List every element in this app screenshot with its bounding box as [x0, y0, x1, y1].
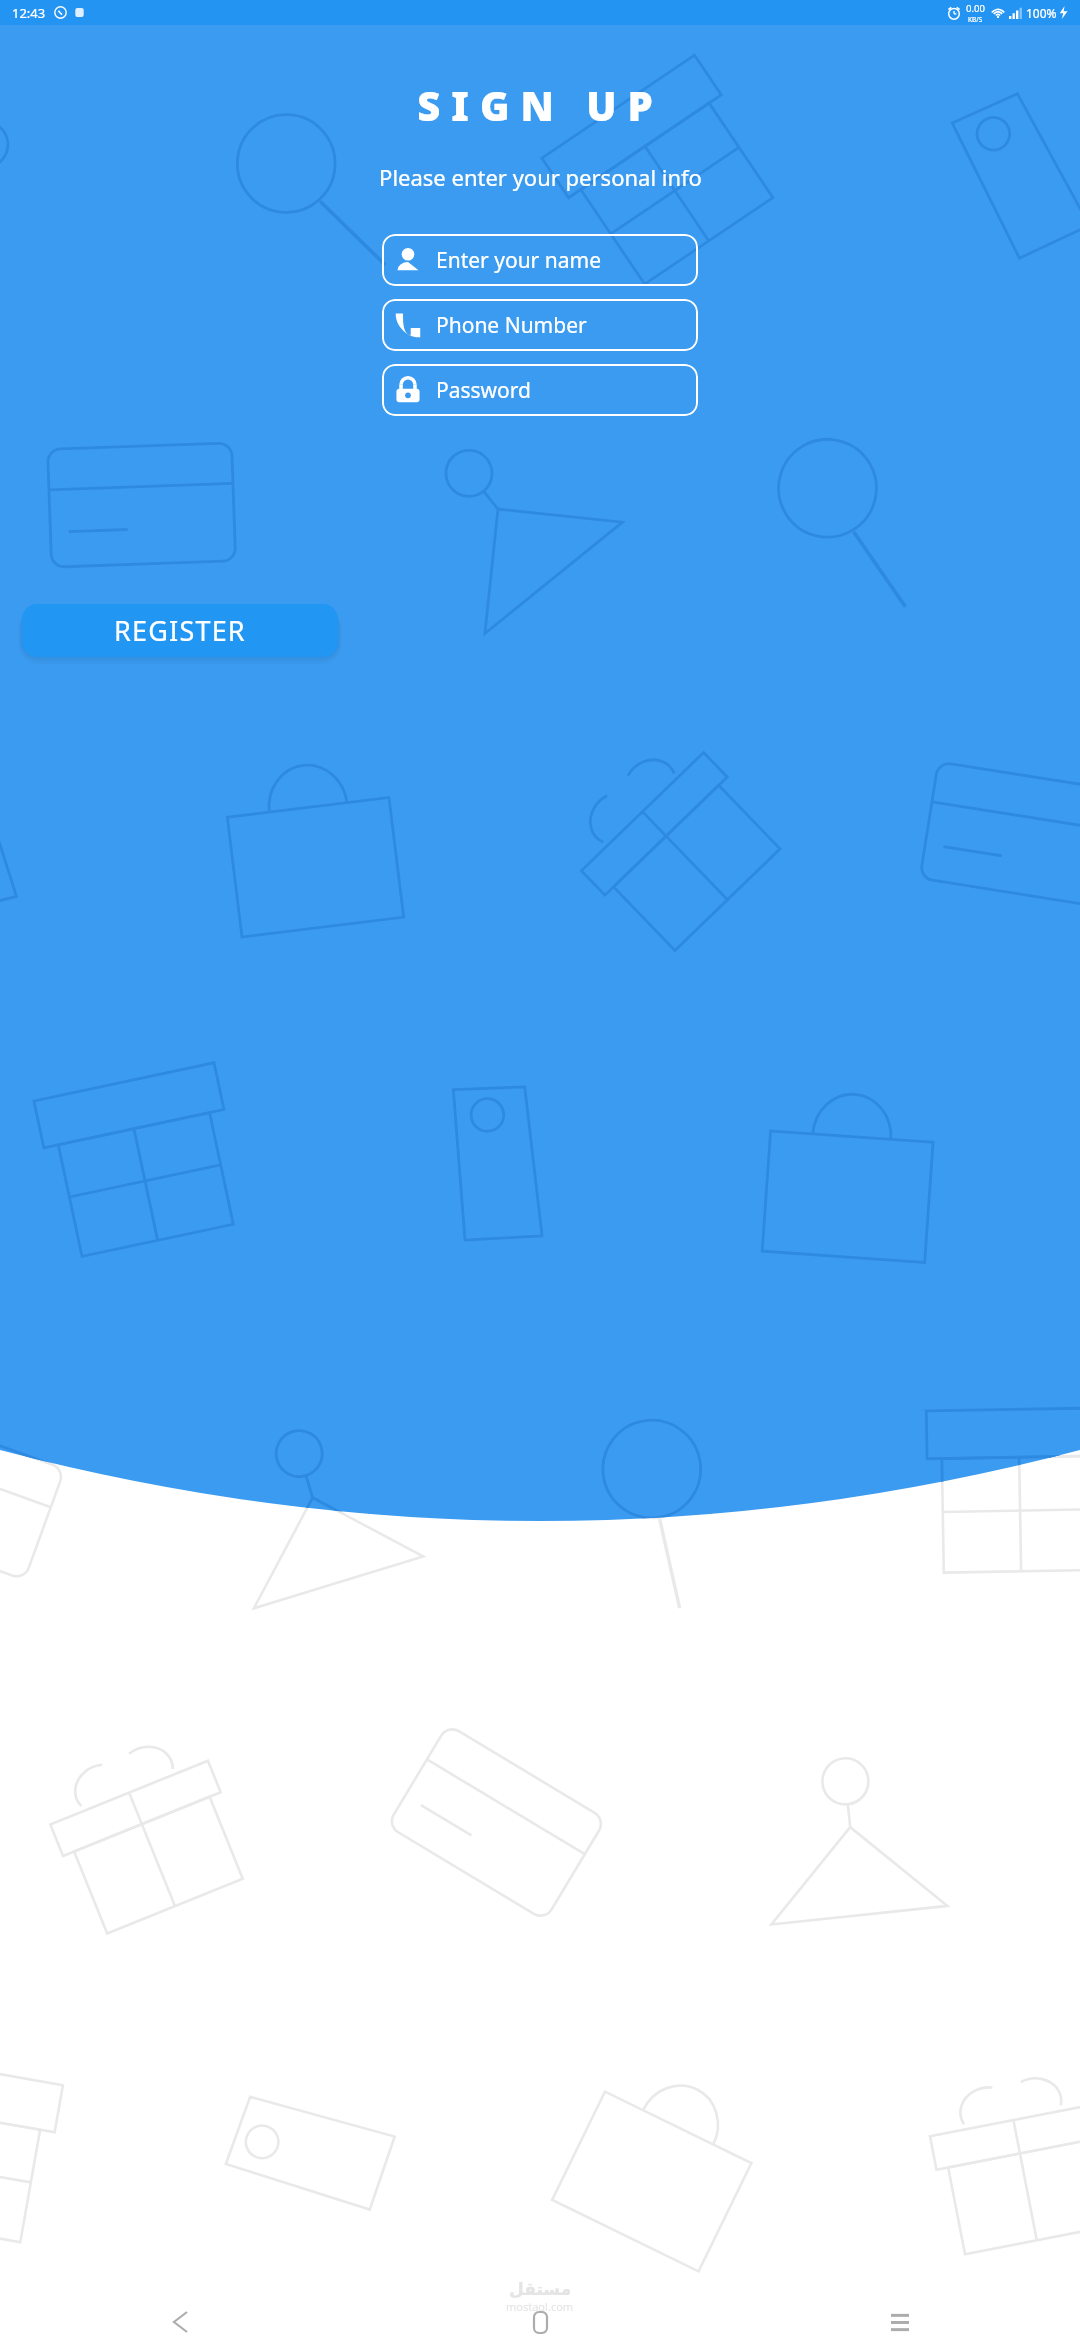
staticText: Password — [436, 376, 531, 405]
button[interactable]: REGISTER — [22, 604, 338, 657]
staticText: 0.00 — [966, 2, 985, 15]
staticText: 12:43 — [12, 4, 46, 22]
staticText: REGISTER — [114, 612, 246, 649]
button[interactable]: Enter your name — [382, 234, 698, 286]
button[interactable]: Back — [160, 2304, 200, 2340]
staticText: Enter your name — [436, 246, 601, 275]
button[interactable]: Phone Number — [382, 299, 698, 351]
button[interactable]: Menu — [880, 2304, 920, 2340]
staticText: Phone Number — [436, 311, 587, 340]
staticText: mostaql.com — [506, 2299, 574, 2314]
button[interactable]: Home — [520, 2304, 560, 2340]
staticText: KB/S — [968, 15, 983, 24]
staticText: مستقل — [509, 2279, 572, 2299]
staticText: 100% — [1026, 5, 1057, 21]
button[interactable]: Password — [382, 364, 698, 416]
staticText: SIGN UP — [417, 78, 664, 132]
staticText: Please enter your personal info — [379, 162, 702, 192]
